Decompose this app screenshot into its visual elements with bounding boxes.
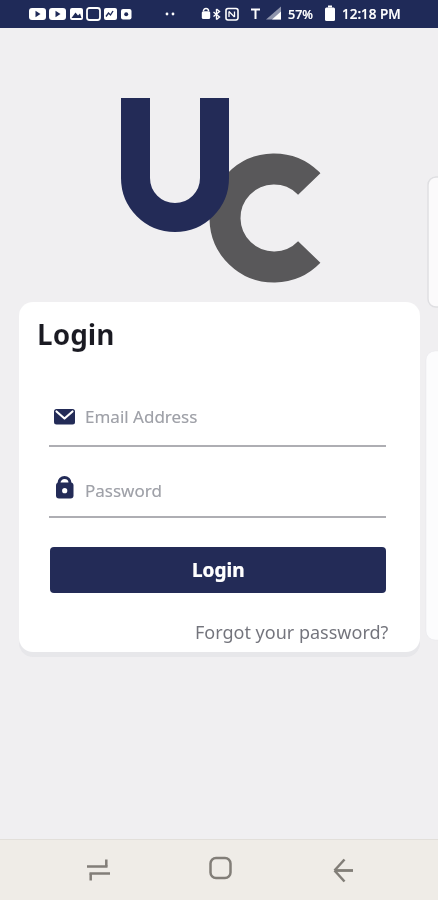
staticText: 57% [288,6,313,23]
staticText: Login [192,557,245,583]
button[interactable] [195,849,245,893]
button[interactable]: Forgot your password? [49,619,389,645]
button[interactable] [73,849,123,893]
button[interactable]: Email Address [49,398,389,434]
staticText: Login [37,315,115,353]
staticText: Email Address [85,405,198,428]
button[interactable] [318,849,368,893]
staticText: Password [85,479,162,502]
button[interactable]: Login [50,547,386,593]
staticText: 12:18 PM [342,5,401,23]
button[interactable]: Password [49,472,389,508]
staticText: Forgot your password? [195,620,389,645]
